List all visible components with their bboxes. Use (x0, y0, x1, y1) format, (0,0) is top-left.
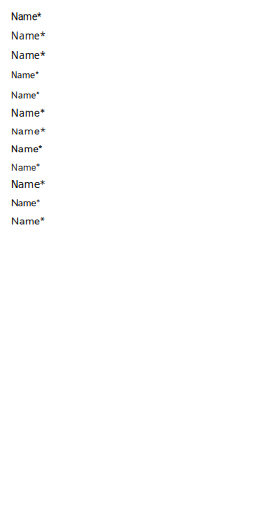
staticText: Name* (11, 88, 40, 101)
staticText: Name* (11, 48, 46, 62)
staticText: Name* (11, 214, 45, 228)
staticText: Name* (11, 179, 45, 190)
staticText: Name* (11, 107, 45, 119)
staticText: Name* (11, 196, 40, 208)
staticText: Name* (11, 143, 42, 155)
staticText: Name* (11, 11, 41, 23)
staticText: Name* (11, 161, 40, 173)
staticText: Name* (11, 29, 46, 42)
staticText: Name* (11, 125, 46, 137)
staticText: Name* (11, 68, 39, 82)
